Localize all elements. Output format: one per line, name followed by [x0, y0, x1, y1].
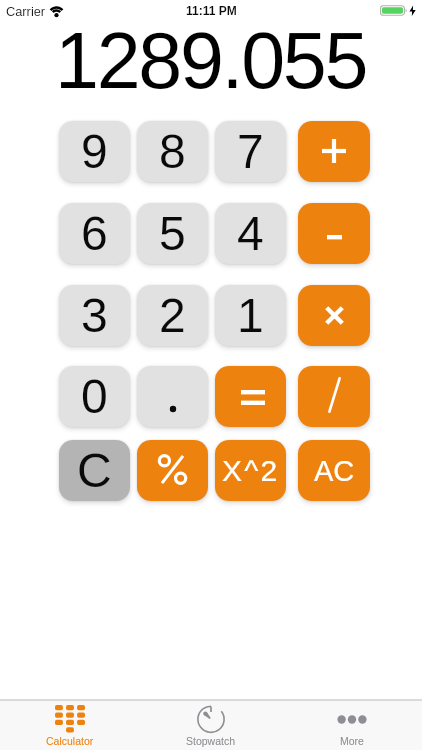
- staticText: Carrier: [6, 4, 46, 18]
- staticText: AC: [314, 455, 355, 487]
- staticText: 7: [237, 125, 264, 179]
- staticText: 5: [159, 207, 186, 261]
- button[interactable]: X^2: [215, 440, 286, 501]
- button[interactable]: Calculator: [0, 700, 140, 750]
- button[interactable]: [298, 366, 370, 427]
- staticText: Stopwatch: [186, 735, 236, 747]
- staticText: X^2: [222, 454, 280, 488]
- button[interactable]: 5: [137, 203, 208, 264]
- staticText: 11:11 PM: [186, 4, 237, 17]
- staticText: 2: [159, 289, 186, 343]
- button[interactable]: AC: [298, 440, 370, 501]
- button[interactable]: 7: [215, 121, 286, 182]
- button[interactable]: Stopwatch: [141, 700, 281, 750]
- button[interactable]: [137, 366, 208, 427]
- staticText: 1289.055: [55, 16, 367, 104]
- staticText: C: [77, 444, 112, 498]
- staticText: 6: [81, 207, 108, 261]
- staticText: 1: [237, 289, 264, 343]
- button[interactable]: [298, 121, 370, 182]
- button[interactable]: 8: [137, 121, 208, 182]
- button[interactable]: 2: [137, 285, 208, 346]
- button[interactable]: More: [281, 700, 422, 750]
- button[interactable]: [298, 203, 370, 264]
- staticText: 3: [81, 289, 108, 343]
- staticText: 8: [159, 125, 186, 179]
- button[interactable]: C: [59, 440, 130, 501]
- staticText: 0: [81, 370, 108, 424]
- button[interactable]: 6: [59, 203, 130, 264]
- button[interactable]: [137, 440, 208, 501]
- button[interactable]: 1: [215, 285, 286, 346]
- button[interactable]: 4: [215, 203, 286, 264]
- staticText: 9: [81, 125, 108, 179]
- button[interactable]: 9: [59, 121, 130, 182]
- button[interactable]: 3: [59, 285, 130, 346]
- staticText: 4: [237, 207, 264, 261]
- button[interactable]: [298, 285, 370, 346]
- button[interactable]: [215, 366, 286, 427]
- staticText: Calculator: [46, 735, 94, 747]
- staticText: More: [340, 735, 364, 747]
- button[interactable]: 0: [59, 366, 130, 427]
